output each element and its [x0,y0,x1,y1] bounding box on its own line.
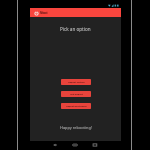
staticText: Pick an option [60,26,91,32]
staticText: Soft Reboot [70,93,83,96]
staticText: Happy rebooting! [60,125,92,130]
button[interactable]: Home [70,141,79,149]
button[interactable]: Reboot Bootloader [61,103,91,109]
button[interactable]: Reboot System [61,79,91,85]
staticText: Reboot Bootloader [66,105,87,108]
staticText: Reboot System [68,81,85,84]
button[interactable]: App icon [33,10,39,16]
button[interactable]: Recents [90,141,99,149]
button[interactable]: Back [50,141,59,149]
staticText: Reboot [40,11,48,15]
button[interactable]: Soft Reboot [61,91,91,97]
